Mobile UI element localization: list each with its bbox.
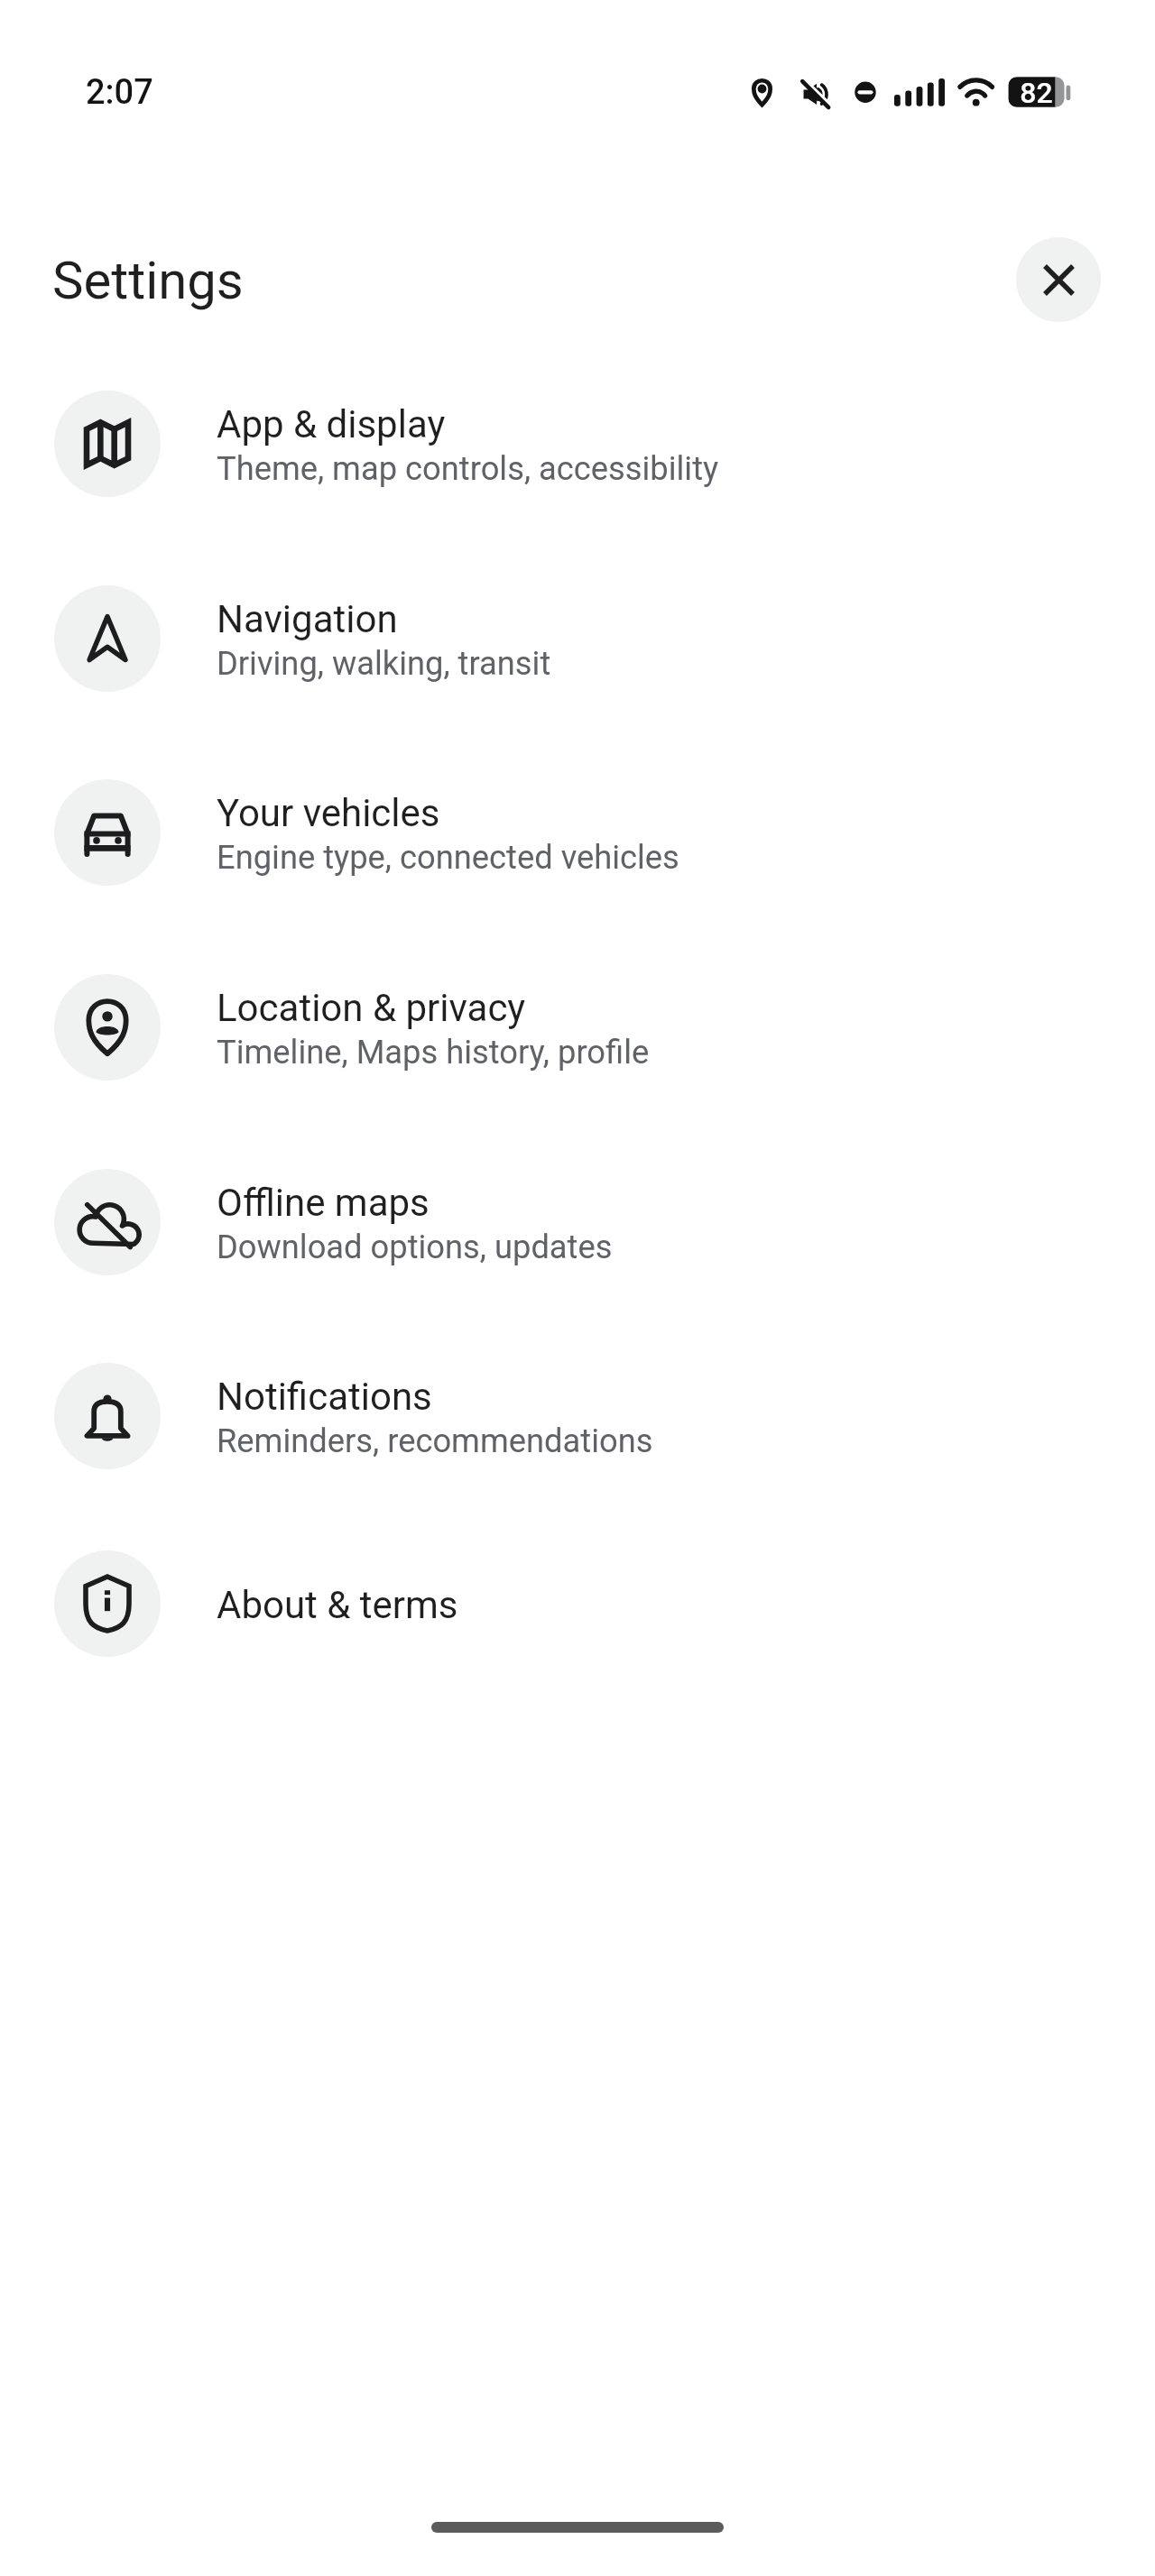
button[interactable]: Your vehicles: [0, 735, 1155, 929]
staticText: Your vehicles: [217, 791, 440, 835]
button[interactable]: Location & privacy: [0, 930, 1155, 1124]
staticText: 82: [1010, 76, 1063, 110]
staticText: App & display: [217, 402, 446, 446]
button[interactable]: About & terms: [0, 1513, 1155, 1693]
staticText: Reminders, recommendations: [217, 1421, 653, 1460]
staticText: Driving, walking, transit: [217, 644, 551, 683]
button[interactable]: Close: [1016, 237, 1101, 322]
staticText: Theme, map controls, accessibility: [217, 449, 719, 488]
staticText: 2:07: [86, 72, 153, 113]
staticText: Engine type, connected vehicles: [217, 838, 679, 877]
staticText: Offline maps: [217, 1181, 430, 1225]
staticText: Settings: [52, 250, 244, 311]
button[interactable]: App & display: [0, 346, 1155, 540]
staticText: About & terms: [217, 1583, 458, 1627]
button[interactable]: Navigation: [0, 541, 1155, 735]
staticText: Navigation: [217, 597, 398, 641]
staticText: Notifications: [217, 1375, 432, 1419]
button[interactable]: Notifications: [0, 1319, 1155, 1513]
staticText: Location & privacy: [217, 986, 526, 1030]
staticText: Timeline, Maps history, profile: [217, 1033, 650, 1072]
button[interactable]: Offline maps: [0, 1125, 1155, 1319]
staticText: Download options, updates: [217, 1228, 613, 1266]
